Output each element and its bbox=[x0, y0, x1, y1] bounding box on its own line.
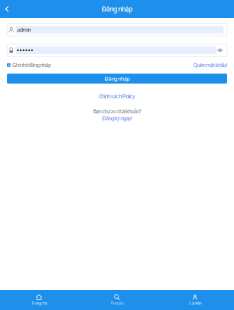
button[interactable]: Đăng nhập bbox=[7, 74, 227, 84]
staticText: Quên mật khẩu! bbox=[193, 61, 227, 69]
button[interactable]: Quên mật khẩu! bbox=[193, 61, 227, 69]
staticText: Bạn chưa có tài khoản? bbox=[93, 108, 141, 115]
staticText: Tra cứu bbox=[111, 300, 123, 306]
staticText: Ghi nhớ đăng nhập bbox=[12, 61, 51, 69]
staticText: Trang chủ bbox=[31, 300, 47, 306]
button[interactable]: Chính sách/Policy bbox=[99, 93, 135, 100]
staticText: Cá nhân bbox=[189, 300, 201, 306]
button[interactable]: Cá nhân bbox=[156, 290, 234, 310]
button[interactable]: Đăng ký ngay! bbox=[102, 115, 132, 122]
staticText: Đăng ký ngay! bbox=[102, 115, 132, 122]
button[interactable]: Back bbox=[0, 0, 14, 18]
staticText: Đăng nhập bbox=[101, 5, 132, 13]
button[interactable]: Show password bbox=[216, 44, 223, 56]
button[interactable]: Tra cứu bbox=[78, 290, 156, 310]
button[interactable]: Ghi nhớ đăng nhập bbox=[7, 61, 51, 69]
button[interactable]: Trang chủ bbox=[0, 290, 78, 310]
staticText: Đăng nhập bbox=[104, 75, 130, 82]
staticText: admin bbox=[17, 26, 31, 33]
staticText: Chính sách/Policy bbox=[99, 93, 135, 100]
